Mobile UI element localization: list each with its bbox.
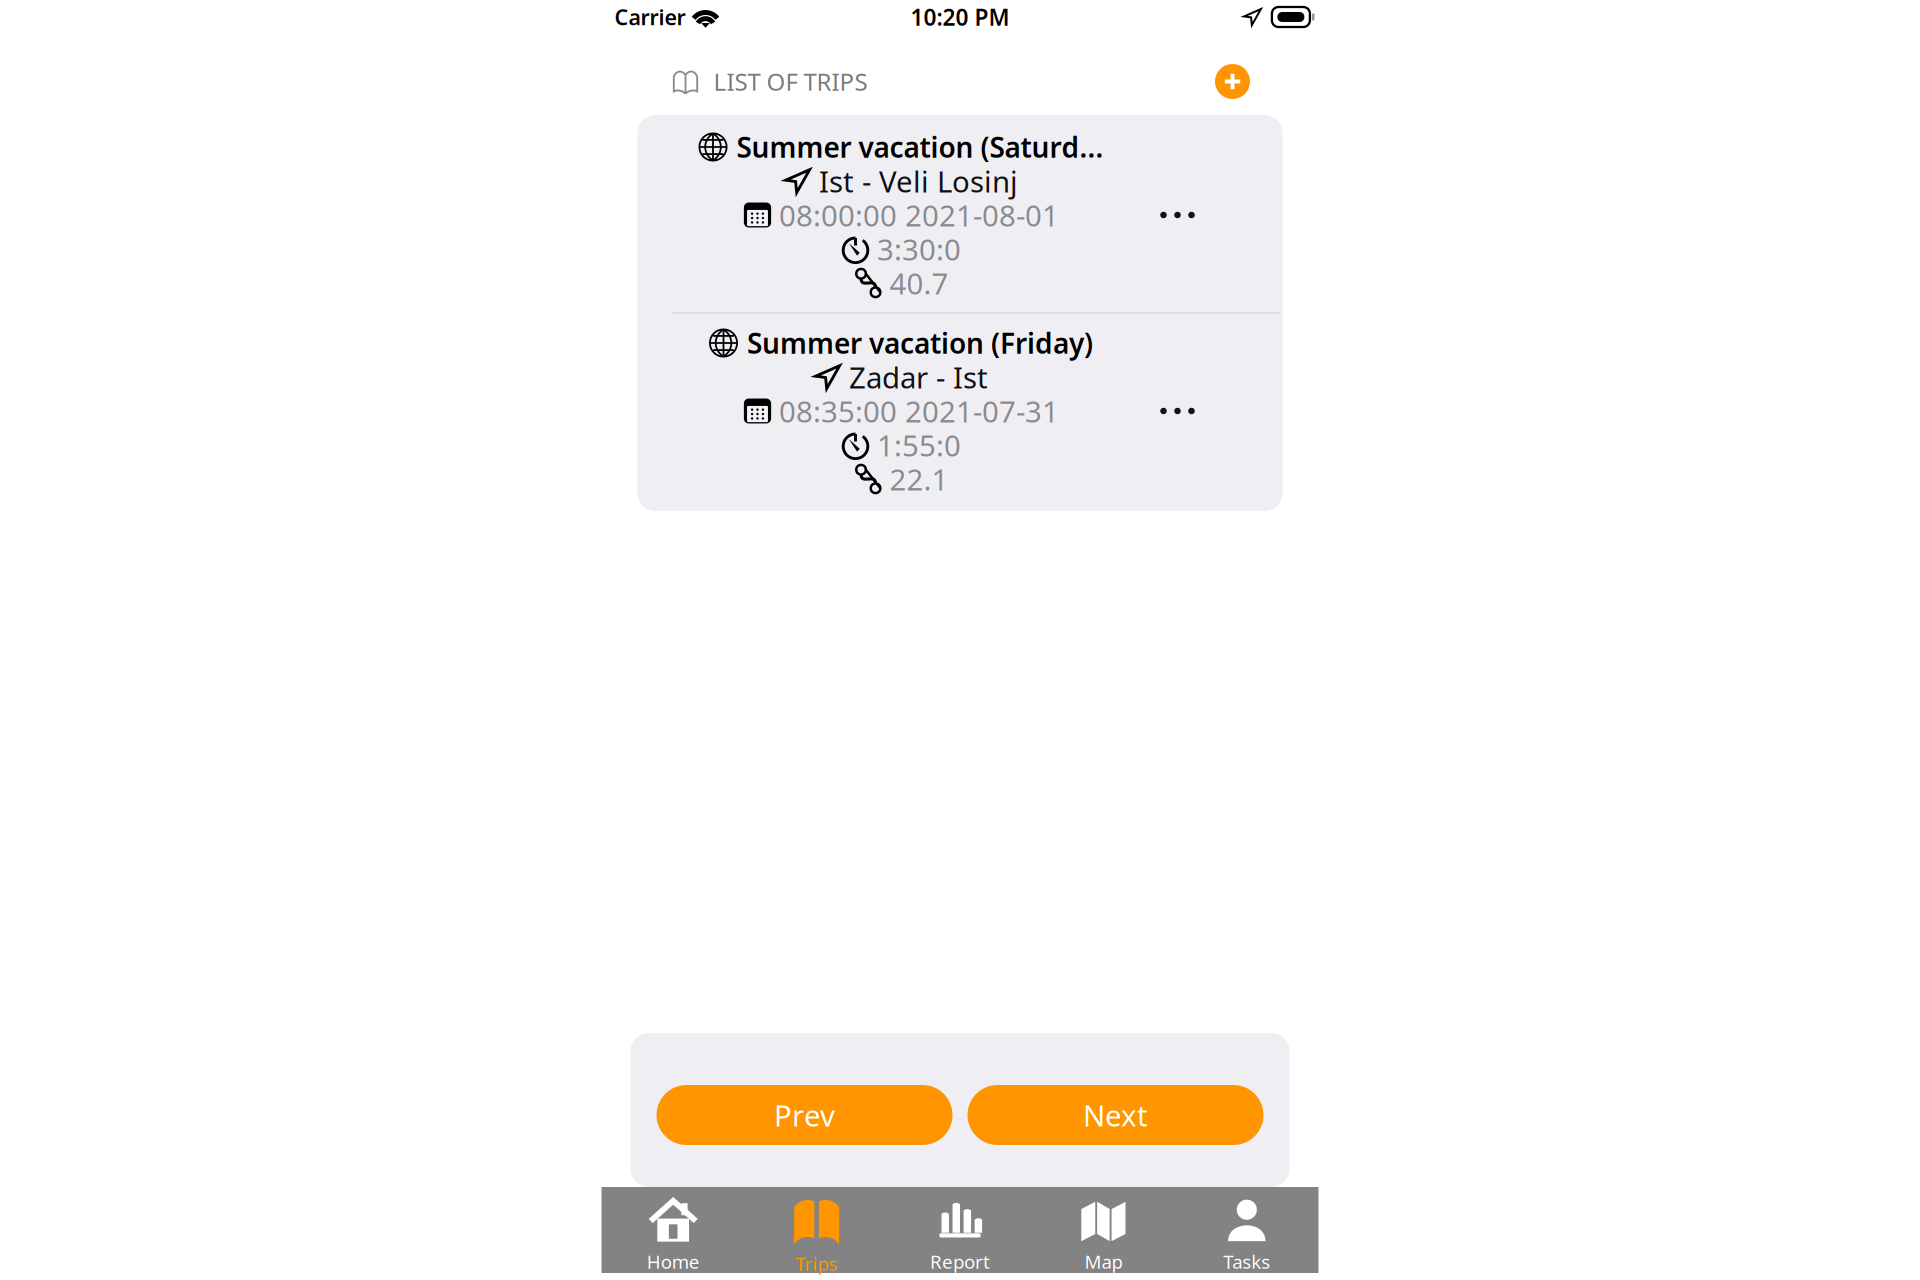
button[interactable]: Home [601, 1187, 745, 1273]
button[interactable]: Trips [745, 1187, 888, 1273]
button[interactable]: More options [1144, 378, 1210, 444]
button[interactable]: Report [888, 1187, 1032, 1273]
staticText: Next [1083, 1095, 1148, 1134]
staticText: Ist - Veli Losinj [819, 161, 1018, 200]
staticText: 22.1 [889, 459, 948, 498]
staticText: Carrier [614, 3, 685, 31]
staticText: Summer vacation (Saturd... [736, 128, 1103, 166]
staticText: Tasks [1223, 1249, 1270, 1274]
staticText: Trips [796, 1251, 838, 1276]
staticText: Report [930, 1249, 990, 1274]
staticText: Summer vacation (Friday) [747, 324, 1093, 362]
staticText: LIST OF TRIPS [713, 66, 867, 97]
staticText: 1:55:0 [877, 425, 961, 464]
button[interactable]: Summer vacation (Friday) [637, 326, 1282, 496]
button[interactable]: More options [1144, 182, 1210, 248]
staticText: Prev [774, 1095, 835, 1134]
button[interactable]: Map [1032, 1187, 1175, 1273]
button[interactable]: Summer vacation (Saturd... [637, 130, 1282, 300]
staticText: Home [647, 1249, 700, 1274]
staticText: 08:00:00 2021-08-01 [779, 195, 1059, 234]
button[interactable]: Tasks [1175, 1187, 1318, 1273]
button[interactable]: Add trip [1206, 55, 1258, 107]
staticText: Zadar - Ist [849, 357, 988, 396]
staticText: 08:35:00 2021-07-31 [779, 391, 1059, 430]
staticText: 3:30:0 [877, 229, 961, 268]
staticText: Map [1084, 1249, 1122, 1274]
staticText: 40.7 [889, 263, 948, 302]
button[interactable]: Next [967, 1085, 1263, 1145]
button[interactable]: Prev [656, 1085, 952, 1145]
staticText: 10:20 PM [910, 2, 1009, 32]
